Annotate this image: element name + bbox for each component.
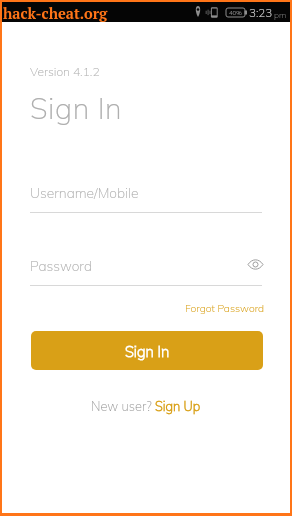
staticText: Sign In: [30, 90, 123, 126]
staticText: 3:23: [249, 5, 273, 19]
button[interactable]: Show password: [240, 250, 272, 282]
button[interactable]: Sign In: [31, 331, 263, 370]
staticText: Forgot Password: [185, 302, 265, 315]
staticText: Password: [30, 257, 92, 274]
staticText: Username/Mobile: [30, 184, 139, 201]
button[interactable]: Forgot Password: [183, 298, 267, 319]
button[interactable]: New user? Sign Up: [87, 396, 205, 416]
staticText: New user? Sign Up: [91, 398, 201, 414]
staticText: 40%: [229, 9, 242, 17]
staticText: Sign In: [125, 342, 170, 360]
staticText: pm: [274, 9, 287, 20]
staticText: hack-cheat.org: [3, 4, 108, 23]
staticText: Version 4.1.2: [30, 64, 100, 79]
